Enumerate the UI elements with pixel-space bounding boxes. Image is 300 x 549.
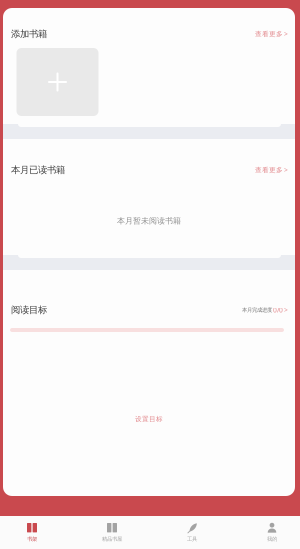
staticText: > <box>284 30 288 38</box>
staticText: 本月完成进度 <box>242 307 272 313</box>
staticText: 本月暂未阅读书籍 <box>117 216 181 226</box>
button[interactable]: 工具 <box>152 517 232 548</box>
button[interactable]: 书架 <box>0 517 72 548</box>
staticText: 查看更多 <box>255 166 283 174</box>
staticText: 设置目标 <box>135 415 163 423</box>
staticText: 工具 <box>187 536 197 542</box>
button[interactable]: 本月完成进度 <box>236 303 288 317</box>
button[interactable]: 我的 <box>232 517 300 548</box>
button[interactable]: 设置目标 <box>3 410 295 428</box>
staticText: 0/0 <box>273 306 283 314</box>
button[interactable]: 精品书屋 <box>72 517 152 548</box>
staticText: 阅读目标 <box>11 304 47 316</box>
button[interactable]: 查看更多 <box>249 163 288 177</box>
staticText: 添加书籍 <box>11 28 47 40</box>
staticText: 书架 <box>27 536 37 542</box>
staticText: 查看更多 <box>255 30 283 38</box>
staticText: 精品书屋 <box>102 536 122 542</box>
staticText: > <box>284 306 288 314</box>
staticText: 本月已读书籍 <box>11 164 65 176</box>
staticText: 我的 <box>267 536 277 542</box>
button[interactable]: 查看更多 <box>249 27 288 41</box>
staticText: > <box>284 166 288 174</box>
